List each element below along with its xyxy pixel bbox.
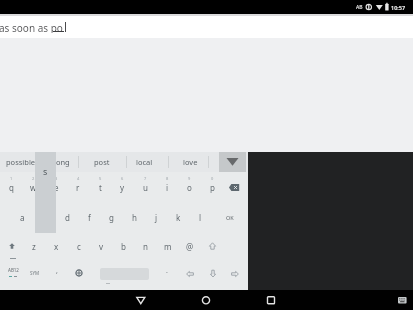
- staticText: AB12: [8, 267, 19, 273]
- staticText: post: [94, 157, 110, 167]
- staticText: 9: [188, 176, 191, 181]
- button[interactable]: post: [87, 153, 117, 171]
- staticText: t: [99, 182, 102, 193]
- button[interactable]: n: [130, 237, 160, 255]
- button[interactable]: possible: [6, 153, 36, 171]
- button[interactable]: [182, 266, 198, 282]
- button[interactable]: [207, 240, 218, 252]
- button[interactable]: g: [96, 208, 126, 226]
- staticText: u: [143, 182, 148, 193]
- staticText: x: [54, 241, 59, 252]
- button[interactable]: x: [41, 237, 71, 255]
- staticText: l: [199, 212, 202, 223]
- staticText: r: [76, 182, 80, 193]
- staticText: 0: [211, 176, 214, 181]
- button[interactable]: o: [174, 178, 204, 196]
- button[interactable]: ,: [42, 262, 72, 280]
- button[interactable]: h: [119, 208, 149, 226]
- button[interactable]: long: [47, 153, 77, 171]
- button[interactable]: @: [175, 237, 205, 255]
- button[interactable]: local: [129, 153, 159, 171]
- staticText: e: [54, 182, 59, 193]
- staticText: h: [132, 212, 137, 223]
- button[interactable]: v: [86, 237, 116, 255]
- staticText: f: [88, 212, 91, 223]
- staticText: s: [43, 165, 48, 177]
- button[interactable]: j: [141, 208, 171, 226]
- button[interactable]: love: [175, 153, 205, 171]
- button[interactable]: AB12: [0, 261, 28, 279]
- button[interactable]: c: [64, 237, 94, 255]
- staticText: @: [186, 241, 194, 252]
- staticText: b: [121, 241, 126, 252]
- staticText: long: [54, 157, 70, 167]
- staticText: a: [20, 212, 25, 223]
- staticText: 4: [77, 176, 80, 181]
- staticText: local: [136, 157, 153, 167]
- staticText: love: [183, 157, 198, 167]
- button[interactable]: SYM: [20, 264, 50, 282]
- staticText: k: [176, 212, 181, 223]
- staticText: p: [210, 182, 215, 193]
- button[interactable]: l: [185, 208, 215, 226]
- staticText: 7: [144, 176, 147, 181]
- button[interactable]: s: [29, 208, 59, 226]
- staticText: SYM: [30, 270, 40, 276]
- button[interactable]: d: [52, 208, 82, 226]
- staticText: n: [143, 241, 148, 252]
- staticText: g: [109, 212, 114, 223]
- button[interactable]: [71, 265, 87, 281]
- staticText: i: [166, 182, 169, 193]
- staticText: .: [166, 266, 168, 276]
- button[interactable]: [228, 181, 242, 193]
- staticText: possible: [6, 157, 36, 167]
- button[interactable]: k: [163, 208, 193, 226]
- button[interactable]: q: [0, 178, 26, 196]
- staticText: j: [155, 212, 158, 223]
- staticText: OK: [226, 214, 234, 221]
- button[interactable]: OK: [215, 208, 245, 226]
- button[interactable]: y: [107, 178, 137, 196]
- staticText: d: [65, 212, 70, 223]
- button[interactable]: [6, 240, 18, 252]
- button[interactable]: [128, 290, 154, 310]
- button[interactable]: [193, 290, 219, 310]
- staticText: AB: [356, 4, 363, 11]
- button[interactable]: [219, 152, 246, 172]
- staticText: o: [187, 182, 192, 193]
- button[interactable]: b: [108, 237, 138, 255]
- staticText: 6: [121, 176, 124, 181]
- staticText: as soon as po: [0, 21, 63, 33]
- button[interactable]: f: [74, 208, 104, 226]
- button[interactable]: t: [85, 178, 115, 196]
- staticText: ,: [56, 266, 58, 276]
- staticText: m: [164, 241, 172, 252]
- staticText: 3: [55, 176, 58, 181]
- button[interactable]: [258, 290, 284, 310]
- button[interactable]: a: [7, 208, 37, 226]
- button[interactable]: u: [130, 178, 160, 196]
- button[interactable]: p: [197, 178, 227, 196]
- staticText: w: [30, 182, 37, 193]
- button[interactable]: z: [19, 237, 49, 255]
- button[interactable]: r: [63, 178, 93, 196]
- button[interactable]: e: [41, 178, 71, 196]
- staticText: 2: [32, 176, 35, 181]
- button[interactable]: m: [153, 237, 183, 255]
- staticText: z: [32, 241, 36, 252]
- staticText: 1: [10, 176, 13, 181]
- staticText: y: [120, 182, 125, 193]
- staticText: 10:57: [391, 4, 406, 11]
- staticText: c: [77, 241, 81, 252]
- staticText: q: [9, 182, 14, 193]
- staticText: v: [99, 241, 104, 252]
- button[interactable]: [205, 266, 221, 282]
- button[interactable]: [227, 266, 243, 282]
- staticText: 8: [166, 176, 169, 181]
- button[interactable]: w: [18, 178, 48, 196]
- button[interactable]: i: [152, 178, 182, 196]
- staticText: 5: [99, 176, 102, 181]
